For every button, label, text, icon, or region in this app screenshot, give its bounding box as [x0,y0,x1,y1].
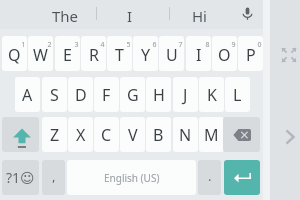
staticText: D [75,84,87,106]
staticText: Y [141,44,151,66]
button[interactable]: C [94,117,119,152]
staticText: A [22,84,33,106]
staticText: 0 [257,40,262,50]
staticText: G [127,84,139,106]
staticText: O [218,44,231,66]
button[interactable]: H [146,77,171,112]
button[interactable]: 4 [81,36,106,71]
button[interactable]: 9 [212,36,237,71]
button[interactable]: The [28,0,102,29]
button[interactable]: 2 [28,36,53,71]
staticText: 8 [205,40,210,50]
staticText: Q [8,44,21,66]
staticText: S [50,84,59,106]
staticText: E [63,44,72,66]
staticText: 7 [178,40,183,50]
button[interactable]: Z [42,117,67,152]
staticText: , [52,167,56,185]
button[interactable]: G [120,77,145,112]
button[interactable]: D [68,77,93,112]
staticText: C [101,124,112,146]
button[interactable]: N [173,117,198,152]
staticText: I [127,6,133,26]
staticText: T [115,44,124,66]
staticText: 3 [74,40,79,50]
staticText: U [166,44,178,66]
button[interactable]: V [120,117,145,152]
button[interactable]: English (US) [67,160,196,195]
staticText: The [52,6,79,26]
staticText: L [233,84,242,106]
staticText: 1 [21,40,26,50]
button[interactable]: I [94,0,166,29]
button[interactable]: 1 [2,36,27,71]
staticText: . [208,167,212,185]
button[interactable]: 7 [159,36,184,71]
staticText: ?1☺ [6,168,35,187]
button[interactable]: 0 [238,36,263,71]
staticText: Hi [192,6,207,26]
staticText: X [76,124,86,146]
staticText: 2 [47,40,52,50]
staticText: P [246,44,256,66]
button[interactable]: Voice input [234,0,261,27]
staticText: Z [50,124,60,146]
button[interactable]: Enter [224,160,260,195]
staticText: N [179,124,192,146]
button[interactable]: ?1☺ [2,160,39,195]
button[interactable]: F [94,77,119,112]
button[interactable]: 3 [55,36,80,71]
button[interactable]: Resize keyboard [277,43,300,67]
button[interactable]: Next [278,125,300,148]
staticText: 5 [126,40,131,50]
button[interactable]: B [146,117,171,152]
button[interactable]: X [68,117,93,152]
staticText: 6 [152,40,157,50]
button[interactable]: 5 [107,36,132,71]
button[interactable]: 8 [186,36,211,71]
staticText: W [33,44,48,66]
staticText: I [196,44,202,66]
staticText: J [183,84,188,106]
button[interactable]: K [199,77,224,112]
button[interactable]: Shift [2,117,39,152]
staticText: V [128,124,138,146]
staticText: 4 [100,40,105,50]
staticText: F [102,84,111,106]
staticText: M [204,124,219,146]
button[interactable]: S [42,77,67,112]
staticText: English (US) [104,171,160,185]
staticText: 9 [231,40,236,50]
staticText: R [89,44,99,66]
staticText: H [153,84,165,106]
button[interactable]: A [15,77,40,112]
button[interactable]: Hi [169,0,229,29]
button[interactable]: J [173,77,198,112]
button[interactable]: L [225,77,250,112]
button[interactable]: . [198,160,221,195]
button[interactable]: M [199,117,224,152]
staticText: B [153,124,164,146]
button[interactable]: Backspace [223,117,260,152]
button[interactable]: 6 [133,36,158,71]
button[interactable]: , [42,160,65,195]
staticText: K [207,84,217,106]
